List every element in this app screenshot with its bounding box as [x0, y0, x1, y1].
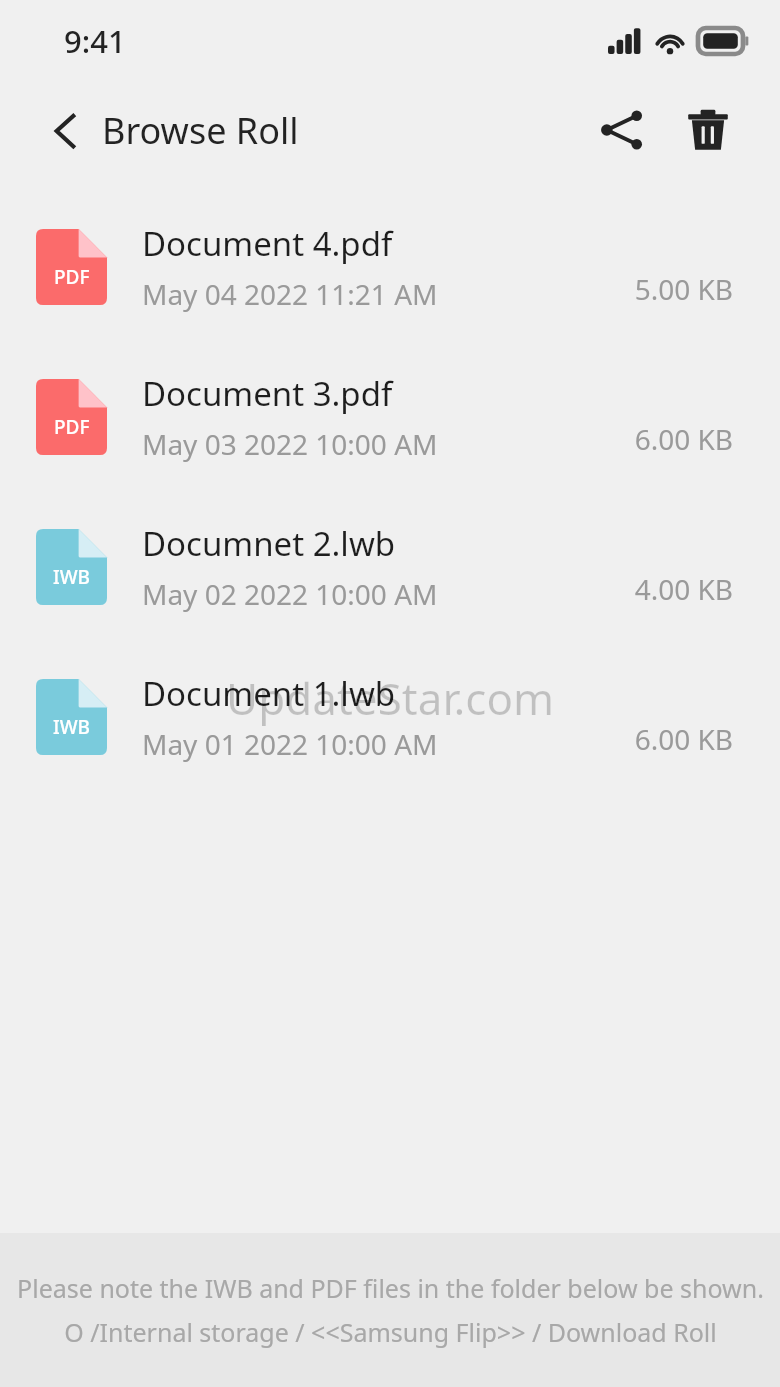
staticText: May 04 2022 11:21 AM	[142, 275, 438, 313]
button[interactable]: Share	[586, 94, 658, 166]
staticText: O /Internal storage / <<Samsung Flip>> /…	[64, 1315, 717, 1349]
button[interactable]: IWB	[0, 492, 780, 642]
staticText: Document 1.lwb	[142, 671, 396, 716]
staticText: Documnet 2.lwb	[142, 521, 396, 566]
staticText: PDF	[54, 264, 90, 290]
staticText: IWB	[53, 714, 91, 740]
staticText: 6.00 KB	[634, 720, 733, 758]
other: Back	[44, 109, 88, 153]
staticText: Document 3.pdf	[142, 371, 393, 416]
staticText: 5.00 KB	[634, 270, 733, 308]
button[interactable]: PDF	[0, 342, 780, 492]
staticText: PDF	[54, 414, 90, 440]
button[interactable]: PDF	[0, 192, 780, 342]
staticText: Please note the IWB and PDF files in the…	[17, 1271, 764, 1305]
button[interactable]: Delete	[672, 94, 744, 166]
button[interactable]: IWB	[0, 642, 780, 792]
staticText: May 02 2022 10:00 AM	[142, 575, 438, 613]
staticText: 9:41	[64, 20, 126, 62]
staticText: May 01 2022 10:00 AM	[142, 725, 438, 763]
button[interactable]: Back	[0, 94, 315, 167]
staticText: 6.00 KB	[634, 420, 733, 458]
staticText: UpdateStar.com	[226, 668, 555, 728]
staticText: 4.00 KB	[634, 570, 733, 608]
staticText: May 03 2022 10:00 AM	[142, 425, 438, 463]
staticText: IWB	[53, 564, 91, 590]
staticText: Document 4.pdf	[142, 221, 393, 266]
staticText: Browse Roll	[102, 106, 299, 155]
